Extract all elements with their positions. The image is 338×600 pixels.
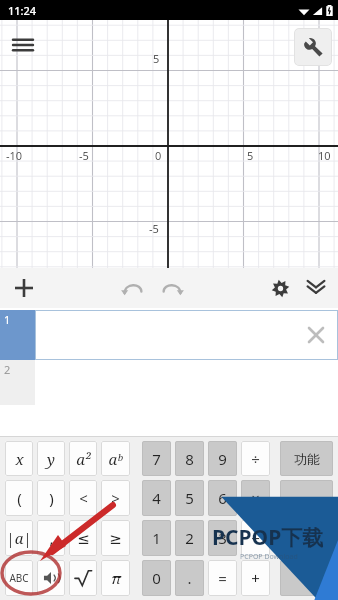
staticText: × <box>251 488 260 508</box>
button[interactable]: aᵇ <box>101 441 130 476</box>
button[interactable]: Menu <box>8 30 38 60</box>
button[interactable]: 1 <box>142 520 171 556</box>
button[interactable]: − <box>241 520 270 556</box>
button[interactable]: × <box>241 480 270 516</box>
button[interactable]: 1 <box>0 310 338 360</box>
button[interactable]: Add expression <box>6 270 42 306</box>
button[interactable]: Settings <box>262 270 298 306</box>
staticText: 8 <box>185 449 194 469</box>
button[interactable]: |a| <box>5 520 33 556</box>
staticText: 功能 <box>294 451 320 467</box>
button[interactable]: 4 <box>142 480 171 516</box>
staticText: 4 <box>152 488 161 508</box>
button[interactable]: 5 <box>175 480 204 516</box>
staticText: 5 <box>185 488 194 508</box>
staticText: = <box>218 568 227 588</box>
button[interactable] <box>280 560 333 596</box>
button[interactable]: x <box>5 441 33 476</box>
staticText: ≥ <box>109 530 122 547</box>
button[interactable]: Clear expression <box>302 321 330 349</box>
staticText: y <box>47 449 55 469</box>
staticText: + <box>251 568 260 588</box>
staticText: -5 <box>149 221 159 236</box>
staticText: 0 <box>152 568 161 588</box>
staticText: ( <box>17 488 22 508</box>
button[interactable]: 8 <box>175 441 204 476</box>
staticText: ≤ <box>77 530 90 547</box>
staticText: 11:24 <box>8 3 37 18</box>
staticText: 9 <box>218 449 227 469</box>
staticText: -10 <box>6 148 23 163</box>
staticText: 0 <box>155 148 162 163</box>
button[interactable]: = <box>208 560 237 596</box>
staticText: 2 <box>4 362 11 377</box>
button[interactable]: Redo <box>154 270 190 306</box>
staticText: > <box>111 488 120 508</box>
button[interactable]: Collapse keypad <box>298 270 334 306</box>
staticText: 6 <box>218 488 227 508</box>
button[interactable]: ≤ <box>69 520 97 556</box>
button[interactable]: 7 <box>142 441 171 476</box>
staticText: ABC <box>9 571 29 585</box>
staticText: 5 <box>153 51 160 66</box>
button[interactable]: y <box>37 441 65 476</box>
staticText: < <box>79 488 88 508</box>
staticText: 1 <box>4 312 11 327</box>
button[interactable]: Undo <box>115 270 151 306</box>
staticText: aᵇ <box>108 449 123 469</box>
staticText: . <box>187 568 192 588</box>
button[interactable]: > <box>101 480 130 516</box>
staticText: PCPOP下载 <box>212 523 324 552</box>
button[interactable] <box>280 480 333 516</box>
button[interactable]: a² <box>69 441 97 476</box>
button[interactable]: . <box>175 560 204 596</box>
button[interactable]: 9 <box>208 441 237 476</box>
staticText: π <box>111 568 121 588</box>
button[interactable] <box>280 520 333 556</box>
button[interactable]: < <box>69 480 97 516</box>
button[interactable]: ) <box>37 480 65 516</box>
button[interactable]: 3 <box>208 520 237 556</box>
button[interactable]: 2 <box>0 360 338 405</box>
staticText: |a| <box>6 528 32 548</box>
button[interactable]: 0 <box>142 560 171 596</box>
button[interactable]: ABC <box>5 560 33 596</box>
staticText: ) <box>49 488 54 508</box>
staticText: 10 <box>318 148 331 163</box>
button[interactable]: ≥ <box>101 520 130 556</box>
button[interactable]: ( <box>5 480 33 516</box>
staticText: 5 <box>247 148 254 163</box>
staticText: -5 <box>79 148 89 163</box>
staticText: x <box>15 449 24 469</box>
button[interactable]: Graph settings <box>294 28 332 66</box>
staticText: 7 <box>152 449 161 469</box>
button[interactable]: Square root <box>69 560 97 596</box>
button[interactable]: , <box>37 520 65 556</box>
button[interactable]: 功能 <box>280 441 333 476</box>
button[interactable]: ÷ <box>241 441 270 476</box>
staticText: − <box>251 528 260 548</box>
button[interactable]: + <box>241 560 270 596</box>
staticText: ÷ <box>251 449 260 469</box>
staticText: a² <box>76 449 91 469</box>
button[interactable]: π <box>101 560 130 596</box>
staticText: 2 <box>185 528 194 548</box>
button[interactable]: Sound <box>37 560 65 596</box>
button[interactable]: 2 <box>175 520 204 556</box>
staticText: , <box>49 528 54 548</box>
staticText: 1 <box>152 528 161 548</box>
staticText: PCPOP Download <box>240 552 298 562</box>
staticText: 3 <box>218 528 227 548</box>
button[interactable]: 6 <box>208 480 237 516</box>
